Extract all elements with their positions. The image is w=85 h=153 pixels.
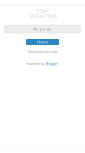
staticText: .	[58, 61, 59, 66]
staticText: Blogger	[45, 61, 57, 66]
staticText: View web version	[27, 49, 57, 54]
staticText: DISTRACTIONS	[28, 13, 56, 19]
button[interactable]: Home	[26, 39, 59, 45]
staticText: Powered by	[25, 61, 44, 66]
staticText: Home	[37, 39, 48, 45]
button[interactable]: Blogger	[45, 61, 57, 66]
staticText: No posts.	[33, 26, 52, 32]
staticText: CHEAP	[35, 8, 49, 14]
button[interactable]: View web version	[27, 49, 57, 54]
